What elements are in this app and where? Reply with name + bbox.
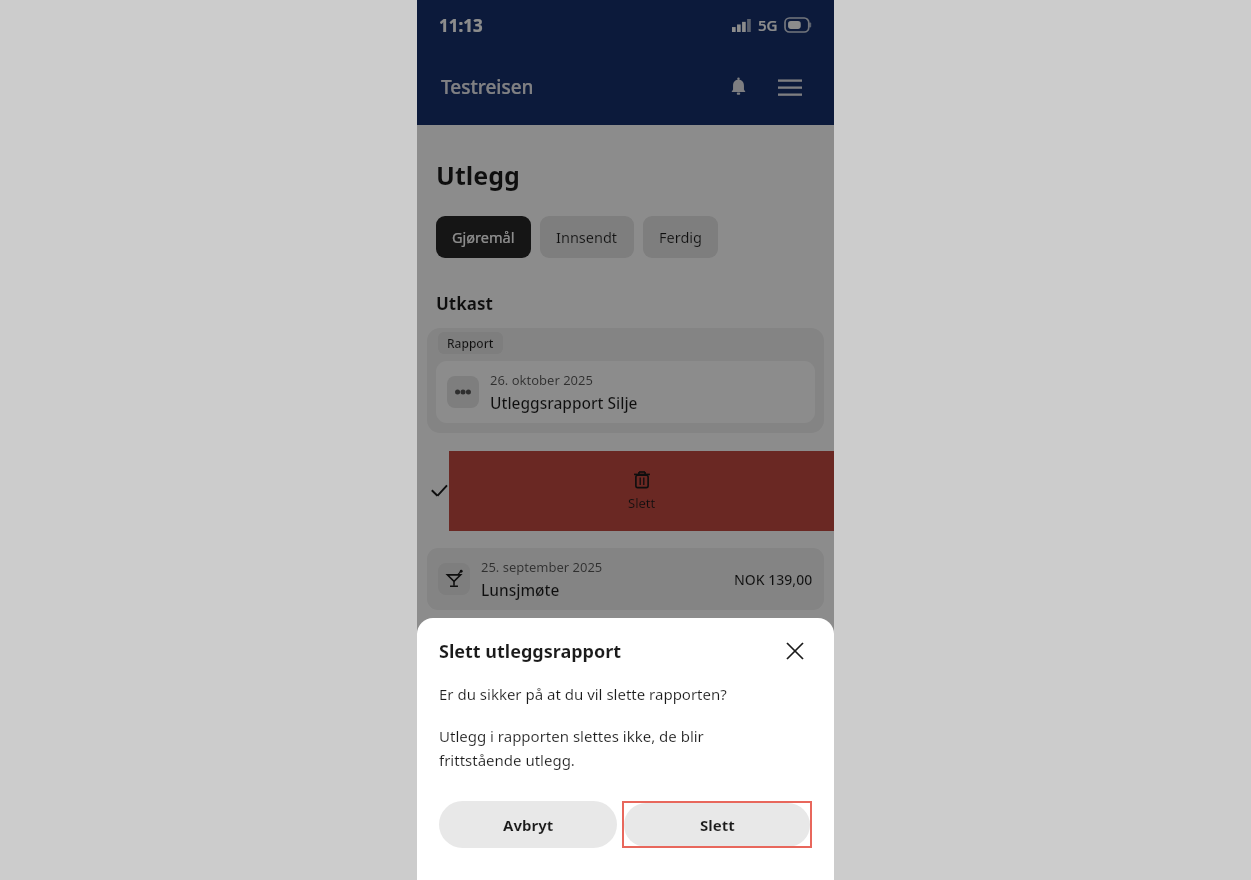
staticText: Slett: [700, 815, 735, 835]
button[interactable]: Close: [778, 634, 812, 668]
staticText: Slett: [628, 494, 656, 512]
button[interactable]: Ferdig: [643, 216, 718, 258]
staticText: NOK 139,00: [734, 570, 813, 589]
button[interactable]: Slett: [622, 801, 812, 848]
staticText: Innsendt: [556, 227, 618, 247]
button[interactable]: 25. september 2025: [427, 548, 824, 610]
staticText: Utleggsrapport Silje: [490, 392, 638, 413]
staticText: 26. oktober 2025: [490, 371, 593, 389]
staticText: Avbryt: [503, 815, 554, 835]
staticText: 5G: [758, 15, 778, 35]
staticText: Testreisen: [441, 74, 534, 100]
button[interactable]: Notifications: [718, 67, 758, 107]
staticText: Rapport: [447, 335, 494, 351]
staticText: Er du sikker på at du vil slette rapport…: [439, 684, 727, 704]
button[interactable]: Avbryt: [439, 801, 617, 848]
staticText: 25. september 2025: [481, 558, 603, 576]
button[interactable]: Rapport: [427, 328, 824, 433]
button[interactable]: Testreisen: [441, 74, 534, 100]
staticText: Lunsjmøte: [481, 579, 560, 600]
staticText: 11:13: [439, 14, 483, 37]
button[interactable]: Menu: [770, 67, 810, 107]
button[interactable]: Gjøremål: [436, 216, 531, 258]
staticText: Slett utleggsrapport: [439, 639, 622, 664]
staticText: Utkast: [436, 292, 493, 315]
button[interactable]: Slett: [449, 451, 834, 531]
staticText: Utlegg: [436, 158, 520, 192]
staticText: frittstående utlegg.: [439, 750, 575, 770]
staticText: Ferdig: [659, 227, 702, 247]
staticText: Gjøremål: [452, 227, 515, 247]
staticText: Utlegg i rapporten slettes ikke, de blir: [439, 726, 704, 746]
button[interactable]: Innsendt: [540, 216, 634, 258]
